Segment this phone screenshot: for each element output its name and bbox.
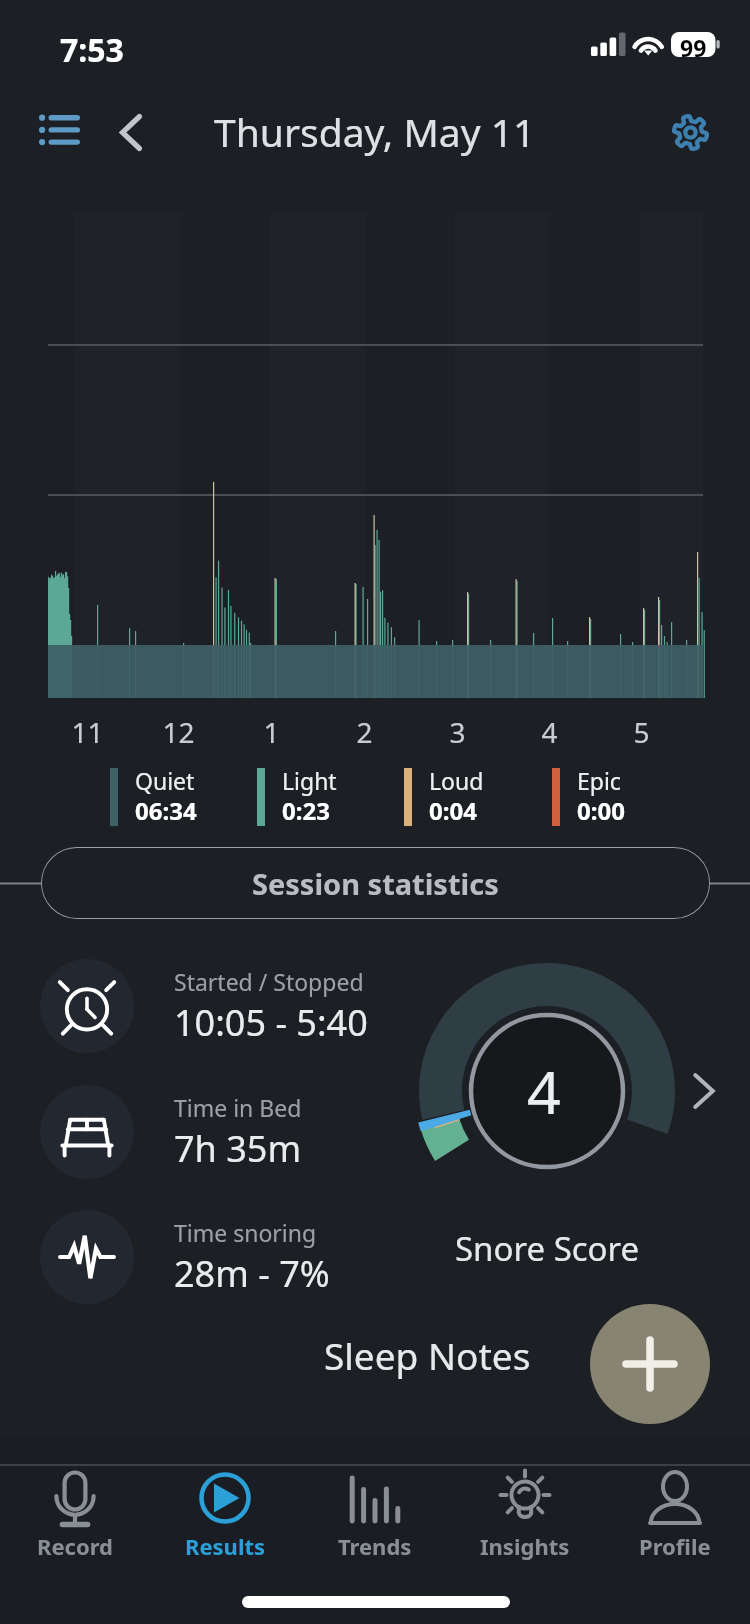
staticText: 0:00 xyxy=(577,794,625,827)
staticText: Sleep Notes xyxy=(324,1330,531,1380)
staticText: Quiet xyxy=(135,765,195,796)
button[interactable]: Profile xyxy=(600,1465,750,1565)
staticText: Loud xyxy=(429,765,484,796)
staticText: 11 xyxy=(71,713,104,751)
button[interactable]: Results xyxy=(150,1465,300,1565)
button[interactable]: Record xyxy=(0,1465,150,1565)
staticText: 12 xyxy=(162,713,195,751)
staticText: Profile xyxy=(639,1531,711,1561)
button[interactable]: Epic xyxy=(552,765,625,829)
button[interactable]: Sleep Notes xyxy=(300,1330,554,1380)
staticText: Epic xyxy=(577,765,621,796)
staticText: Trends xyxy=(338,1531,412,1561)
staticText: 7:53 xyxy=(60,28,124,72)
staticText: Time in Bed xyxy=(174,1092,302,1123)
button[interactable]: Time snoring xyxy=(40,1203,440,1311)
staticText: Thursday, May 11 xyxy=(214,105,536,158)
staticText: 28m - 7% xyxy=(174,1249,330,1298)
staticText: Record xyxy=(37,1531,113,1561)
staticText: 4 xyxy=(541,713,558,751)
staticText: Time snoring xyxy=(174,1217,317,1248)
button[interactable]: Back xyxy=(102,94,160,170)
button[interactable]: Quiet xyxy=(110,765,197,829)
staticText: Results xyxy=(185,1531,266,1561)
staticText: 7h 35m xyxy=(174,1124,302,1173)
staticText: Started / Stopped xyxy=(174,966,364,997)
staticText: 3 xyxy=(449,713,466,751)
staticText: 5 xyxy=(633,713,650,751)
staticText: Session statistics xyxy=(252,864,499,903)
staticText: 99 xyxy=(680,32,707,57)
staticText: 0:04 xyxy=(429,794,477,827)
staticText: 10:05 - 5:40 xyxy=(174,998,368,1047)
button[interactable]: Light xyxy=(257,765,337,829)
staticText: 2 xyxy=(356,713,373,751)
button[interactable]: List xyxy=(20,94,98,170)
staticText: 4 xyxy=(527,1051,561,1131)
button[interactable]: Started / Stopped xyxy=(40,952,440,1060)
button[interactable]: Session statistics xyxy=(41,847,710,919)
button[interactable]: Trends xyxy=(300,1465,450,1565)
button[interactable]: Next xyxy=(674,1061,734,1121)
button[interactable]: Loud xyxy=(404,765,484,829)
button[interactable]: Add sleep note xyxy=(590,1304,710,1424)
staticText: Light xyxy=(282,765,337,796)
staticText: Snore Score xyxy=(455,1226,640,1271)
button[interactable]: Insights xyxy=(450,1465,600,1565)
button[interactable]: Settings xyxy=(652,91,728,173)
staticText: Insights xyxy=(480,1531,570,1561)
staticText: 0:23 xyxy=(282,794,330,827)
staticText: 1 xyxy=(263,713,280,751)
button[interactable]: Snore Score xyxy=(419,963,675,1219)
staticText: 06:34 xyxy=(135,794,197,827)
button[interactable]: Time in Bed xyxy=(40,1078,440,1186)
